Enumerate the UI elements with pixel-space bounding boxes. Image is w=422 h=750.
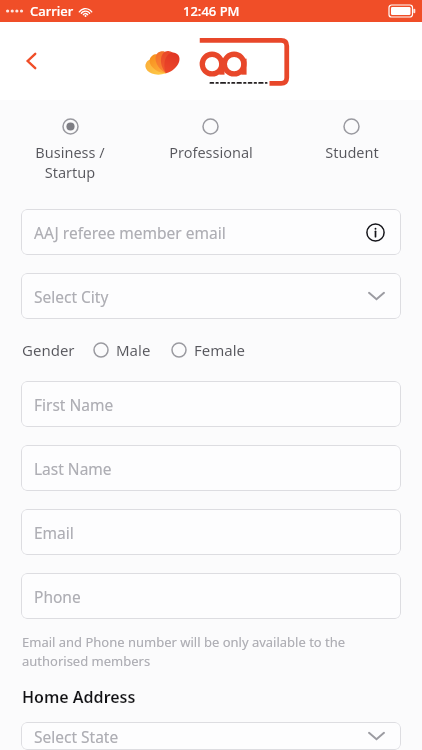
staticText: Professional bbox=[169, 142, 253, 162]
button[interactable]: Select State bbox=[21, 722, 401, 750]
button[interactable]: Back bbox=[12, 41, 52, 81]
staticText: Female bbox=[194, 340, 246, 360]
button[interactable]: Male bbox=[93, 340, 151, 360]
staticText: First Name bbox=[34, 394, 114, 415]
staticText: Home Address bbox=[22, 686, 136, 708]
other: Expand Select State bbox=[364, 724, 388, 748]
button[interactable]: Email bbox=[21, 509, 401, 555]
button[interactable]: Female bbox=[171, 340, 246, 360]
staticText: Carrier bbox=[30, 2, 74, 20]
other: Expand Select City bbox=[364, 284, 388, 308]
staticText: Email bbox=[34, 522, 74, 543]
button[interactable]: AAJ referee member email bbox=[21, 209, 401, 255]
staticText: Select City bbox=[34, 286, 109, 307]
staticText: Business / Startup bbox=[35, 142, 105, 183]
button[interactable]: Student bbox=[281, 114, 422, 166]
staticText: AAJ referee member email bbox=[34, 222, 226, 243]
staticText: Male bbox=[116, 340, 151, 360]
button[interactable]: Information bbox=[362, 219, 388, 245]
staticText: Phone bbox=[34, 586, 81, 607]
staticText: Student bbox=[325, 142, 379, 162]
button[interactable]: First Name bbox=[21, 381, 401, 427]
staticText: Email and Phone number will be only avai… bbox=[22, 633, 400, 670]
button[interactable]: Select City bbox=[21, 273, 401, 319]
button[interactable]: Professional bbox=[140, 114, 281, 166]
staticText: Last Name bbox=[34, 458, 112, 479]
button[interactable]: Phone bbox=[21, 573, 401, 619]
staticText: Gender bbox=[22, 340, 75, 360]
button[interactable]: Business / Startup bbox=[0, 114, 140, 187]
staticText: 12:46 PM bbox=[183, 2, 240, 20]
staticText: Select State bbox=[34, 726, 119, 747]
button[interactable]: Last Name bbox=[21, 445, 401, 491]
